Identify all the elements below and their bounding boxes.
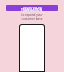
staticText: to expand your customer base <box>21 13 43 21</box>
staticText: Use our Wix Pro <box>23 5 42 8</box>
staticText: TRANSLATION <box>21 8 43 11</box>
button[interactable]: Use our Wix Pro <box>6 5 58 11</box>
